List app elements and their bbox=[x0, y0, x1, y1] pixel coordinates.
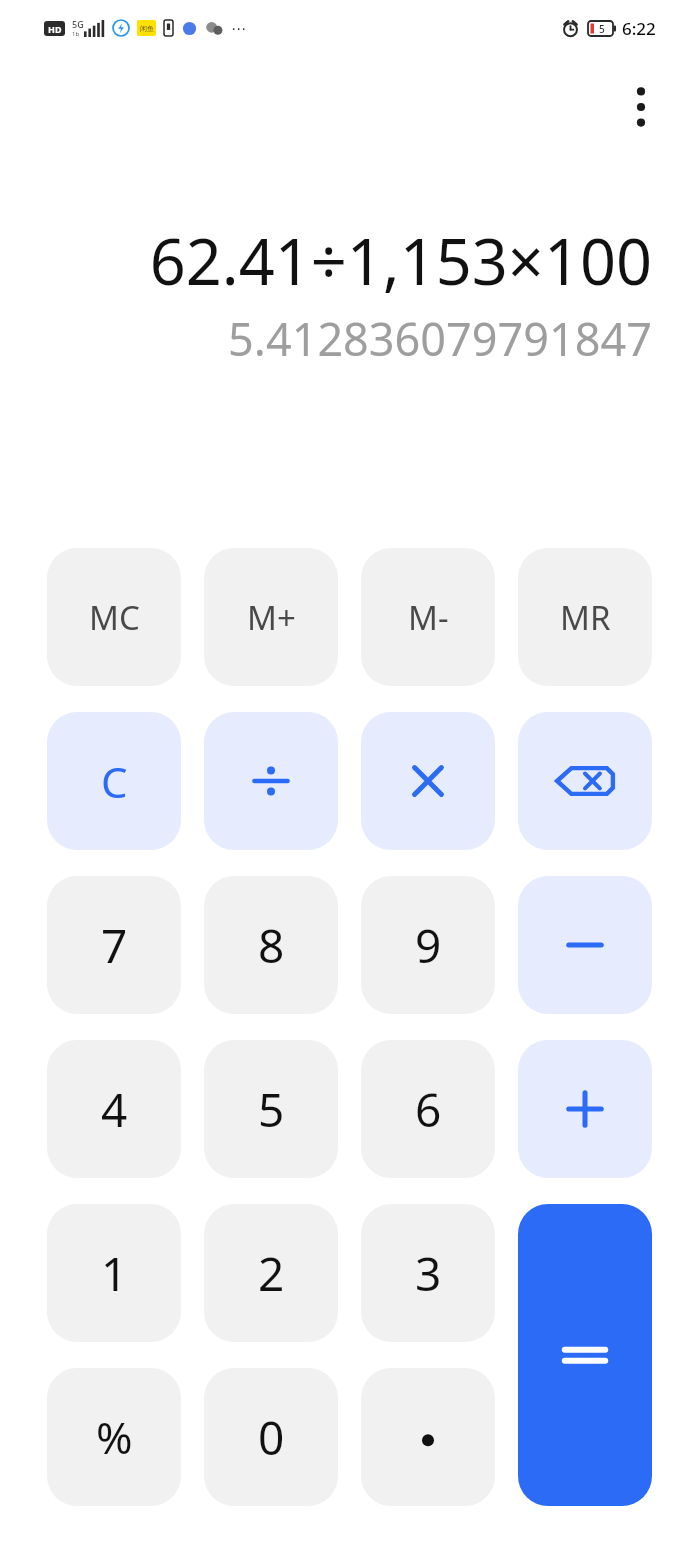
button[interactable]: Divide bbox=[204, 712, 338, 850]
staticText: 5 bbox=[258, 1078, 285, 1141]
staticText: 5G bbox=[72, 18, 84, 30]
staticText: ⋯ bbox=[231, 20, 246, 37]
button[interactable]: Clear bbox=[47, 712, 181, 850]
button[interactable]: M+ bbox=[204, 548, 338, 686]
staticText: 6:22 bbox=[622, 17, 656, 40]
button[interactable]: Percent bbox=[47, 1368, 181, 1506]
staticText: 2 bbox=[258, 1242, 285, 1305]
staticText: 6 bbox=[415, 1078, 442, 1141]
button[interactable]: 3 bbox=[361, 1204, 495, 1342]
button[interactable]: 8 bbox=[204, 876, 338, 1014]
staticText: 9 bbox=[415, 914, 442, 977]
button[interactable]: Backspace bbox=[518, 712, 652, 850]
staticText: % bbox=[96, 1407, 133, 1467]
staticText: MR bbox=[560, 595, 611, 640]
button[interactable]: M- bbox=[361, 548, 495, 686]
button[interactable]: MC bbox=[47, 548, 181, 686]
button[interactable]: Minus bbox=[518, 876, 652, 1014]
button[interactable]: 4 bbox=[47, 1040, 181, 1178]
staticText: 62.41÷1,153×100 bbox=[149, 218, 652, 304]
staticText: 5 bbox=[599, 22, 605, 36]
staticText: MC bbox=[89, 595, 140, 640]
staticText: 5.412836079791847 bbox=[228, 308, 652, 369]
button[interactable]: MR bbox=[518, 548, 652, 686]
button[interactable]: 0 bbox=[204, 1368, 338, 1506]
button[interactable]: 2 bbox=[204, 1204, 338, 1342]
button[interactable]: 1 bbox=[47, 1204, 181, 1342]
staticText: 闲鱼 bbox=[140, 24, 154, 33]
staticText: M+ bbox=[247, 595, 296, 640]
staticText: 1 bbox=[101, 1242, 128, 1305]
staticText: 0 bbox=[258, 1406, 285, 1469]
button[interactable]: 7 bbox=[47, 876, 181, 1014]
staticText: C bbox=[101, 753, 128, 810]
button[interactable]: Decimal point bbox=[361, 1368, 495, 1506]
staticText: HD bbox=[48, 23, 62, 35]
button[interactable]: 5 bbox=[204, 1040, 338, 1178]
button[interactable]: 9 bbox=[361, 876, 495, 1014]
button[interactable]: More options bbox=[608, 74, 674, 140]
staticText: 1b bbox=[72, 30, 80, 38]
button[interactable]: Equals bbox=[518, 1204, 652, 1506]
button[interactable]: 6 bbox=[361, 1040, 495, 1178]
staticText: 8 bbox=[258, 914, 285, 977]
staticText: M- bbox=[408, 595, 449, 640]
button[interactable]: Multiply bbox=[361, 712, 495, 850]
button[interactable]: Plus bbox=[518, 1040, 652, 1178]
staticText: 4 bbox=[101, 1078, 128, 1141]
staticText: 7 bbox=[101, 914, 128, 977]
staticText: 3 bbox=[415, 1242, 442, 1305]
